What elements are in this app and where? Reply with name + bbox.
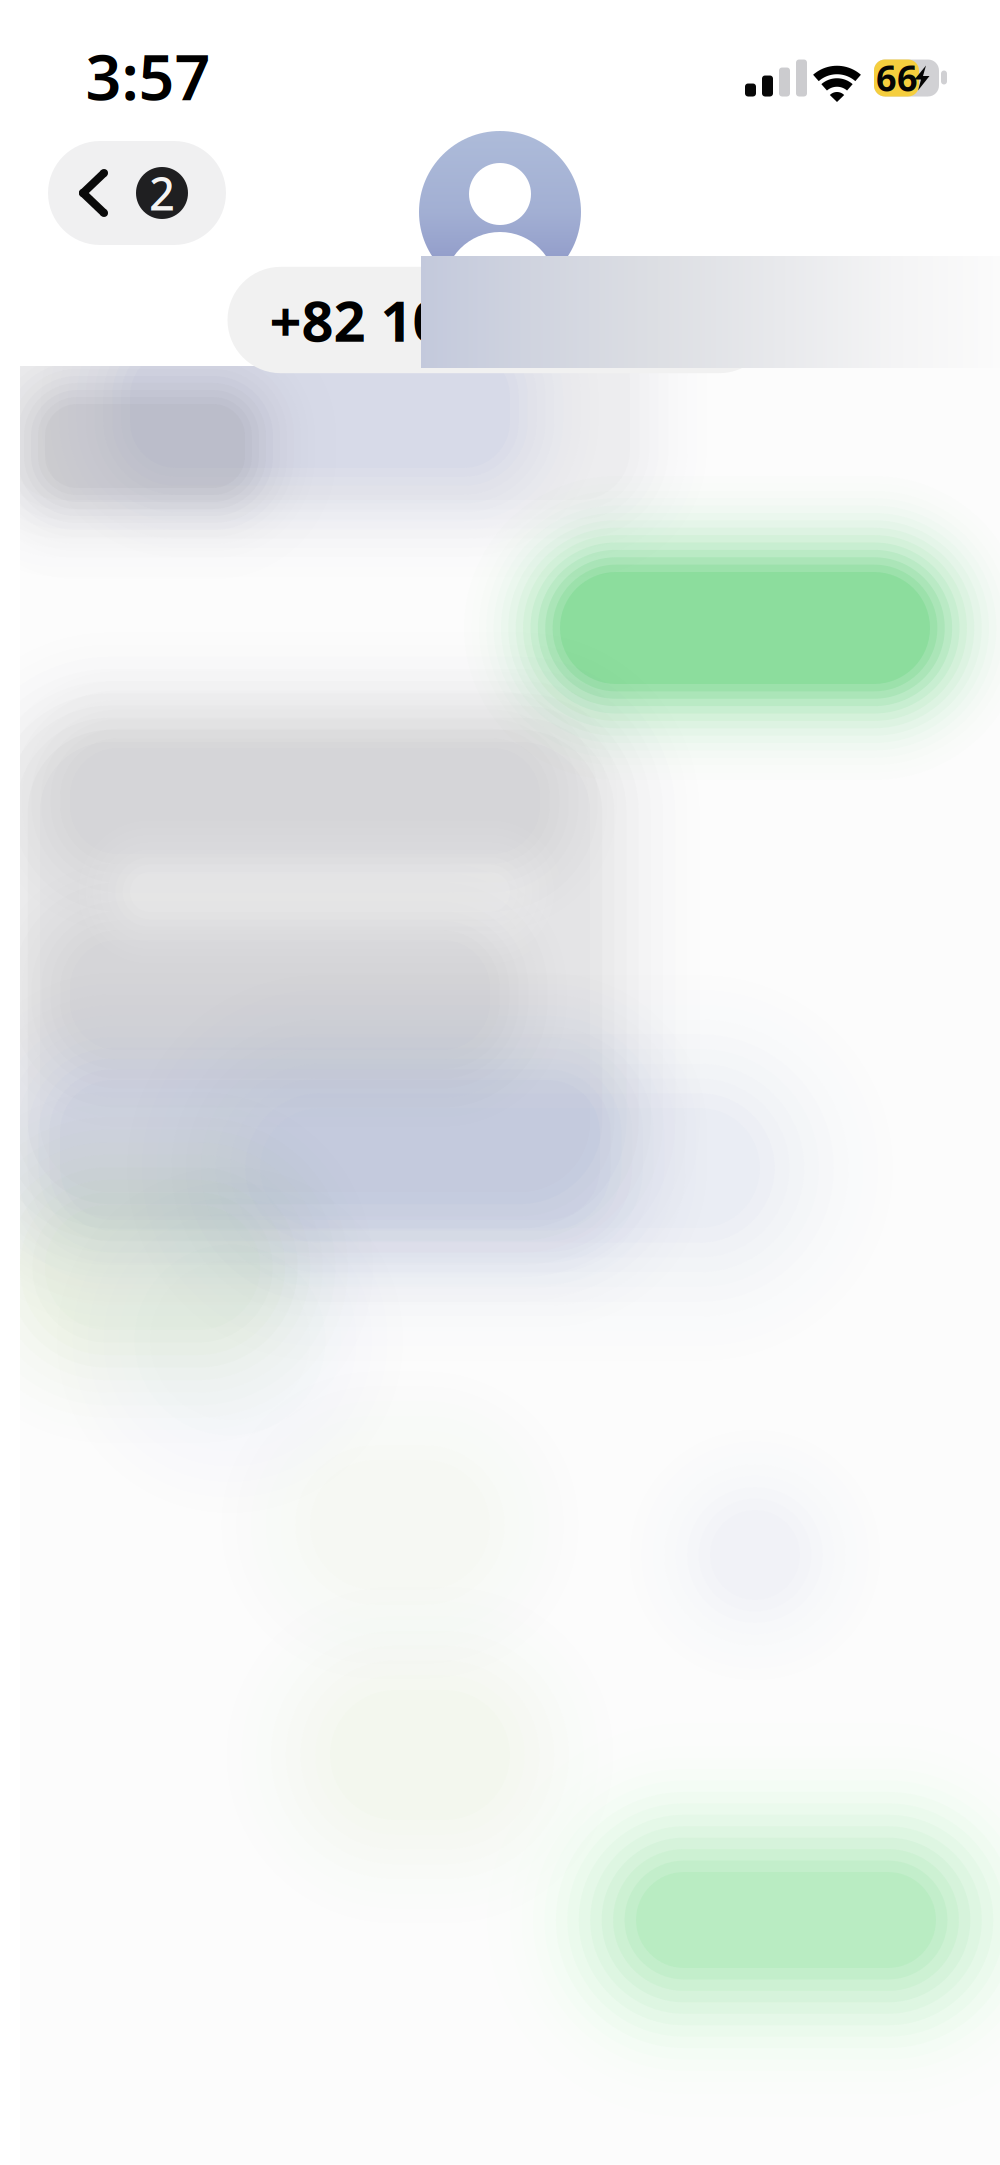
staticText: 3:57 [85,34,210,118]
staticText: +82 10 1234 5678 [269,283,730,357]
button[interactable]: Back, 2 unread [48,141,226,245]
staticText: 2 [149,163,175,223]
staticText: 66 [876,54,918,101]
button[interactable]: Contact +82 10 1234 5678 [227,267,772,373]
